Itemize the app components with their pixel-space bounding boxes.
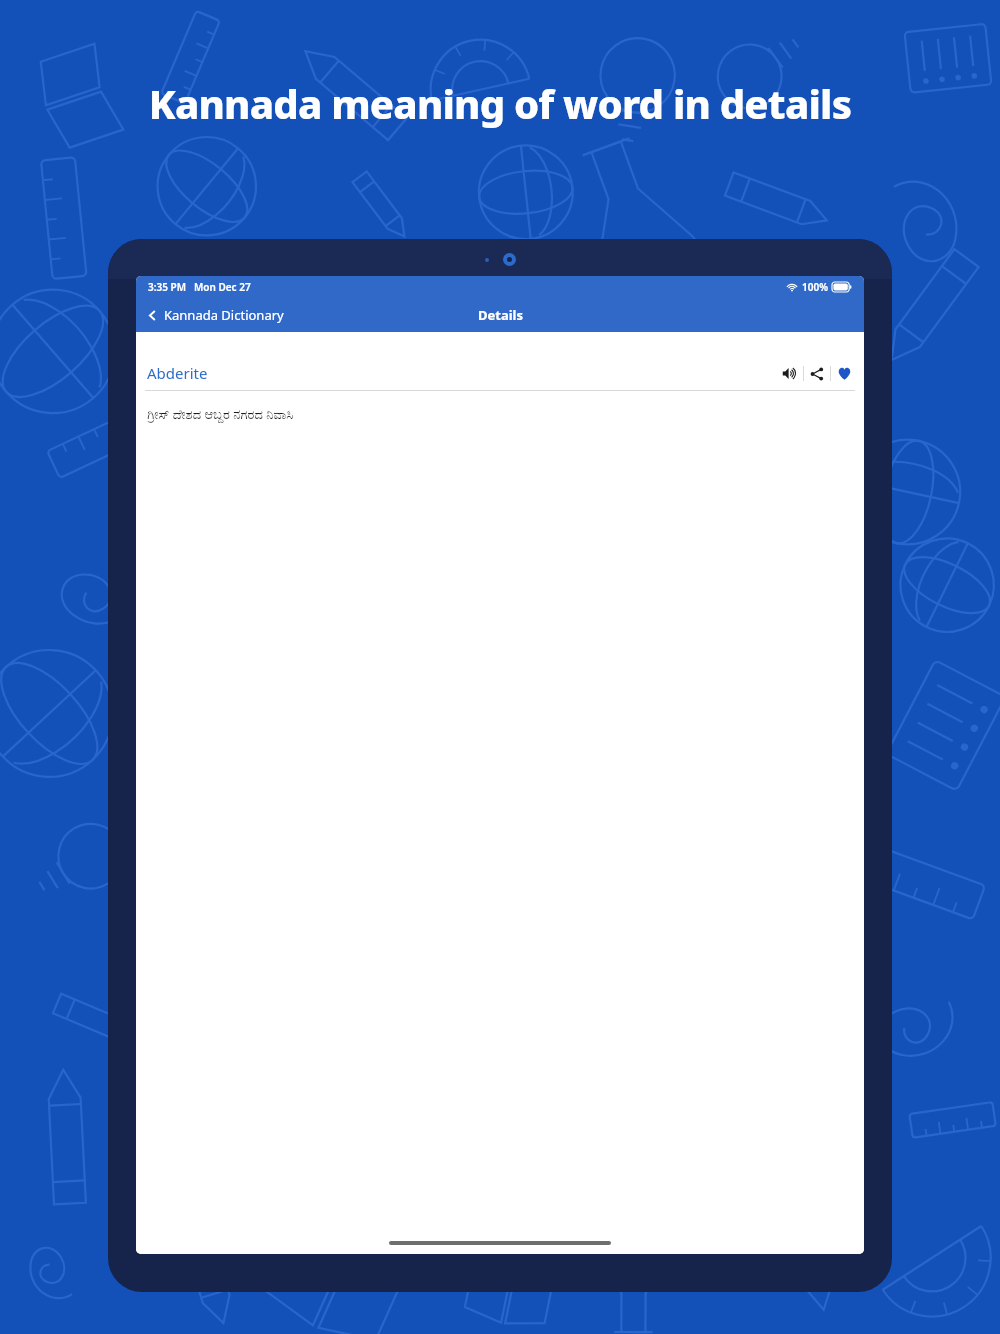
button[interactable]: Favorite	[831, 362, 854, 385]
staticText: 3:35 PM	[148, 280, 186, 294]
staticText: Details	[478, 306, 523, 324]
staticText: ಗ್ರೀಸ್ ದೇಶದ ಆಬ್ದರ ನಗರದ ನಿವಾಸಿ	[147, 405, 294, 423]
staticText: 100%	[802, 280, 828, 294]
button[interactable]: Share	[804, 363, 830, 385]
staticText: Abderite	[147, 363, 208, 383]
staticText: Kannada meaning of word in details	[24, 76, 976, 130]
staticText: Kannada Dictionary	[164, 306, 284, 324]
button[interactable]: Pronounce	[776, 362, 803, 385]
staticText: Mon Dec 27	[194, 280, 251, 294]
button[interactable]: Kannada Dictionary	[136, 302, 294, 328]
